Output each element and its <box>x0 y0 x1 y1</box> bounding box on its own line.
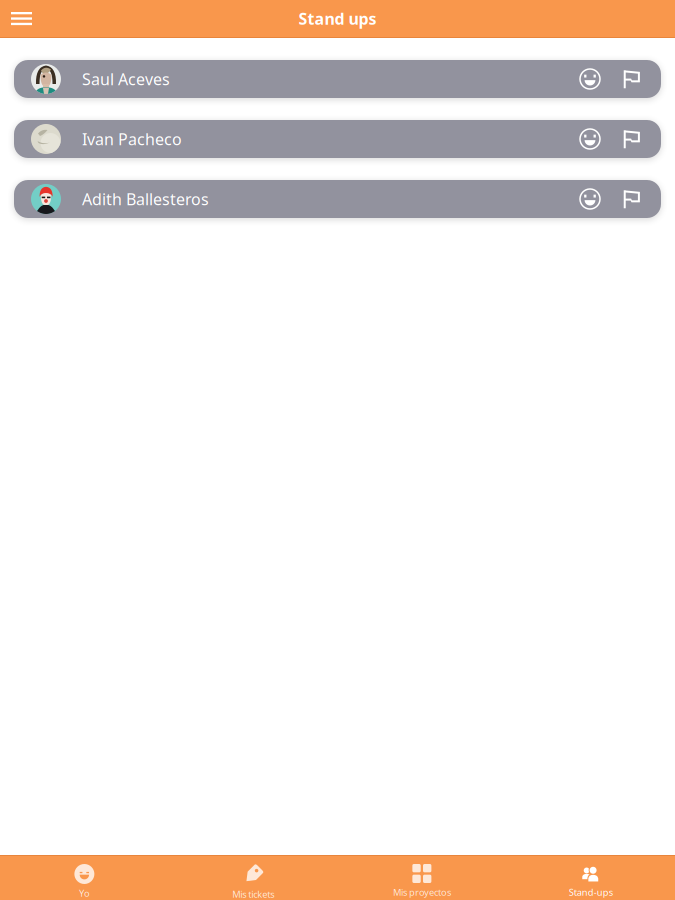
staticText: Mis proyectos <box>393 886 451 898</box>
button[interactable]: Ivan Pacheco <box>14 120 661 158</box>
staticText: Ivan Pacheco <box>82 128 182 150</box>
staticText: Adith Ballesteros <box>82 188 209 210</box>
button[interactable]: Mis tickets <box>169 856 338 900</box>
button[interactable]: Mis proyectos <box>337 856 506 900</box>
button[interactable]: Saul Aceves <box>14 60 661 98</box>
staticText: Saul Aceves <box>82 68 170 90</box>
button[interactable]: Menu <box>0 0 44 37</box>
staticText: Yo <box>79 887 90 899</box>
button[interactable]: Yo <box>0 856 169 900</box>
staticText: Stand ups <box>298 8 376 29</box>
button[interactable]: Adith Ballesteros <box>14 180 661 218</box>
staticText: Stand-ups <box>569 886 613 898</box>
staticText: Mis tickets <box>232 888 274 900</box>
button[interactable]: Stand-ups <box>506 856 675 900</box>
